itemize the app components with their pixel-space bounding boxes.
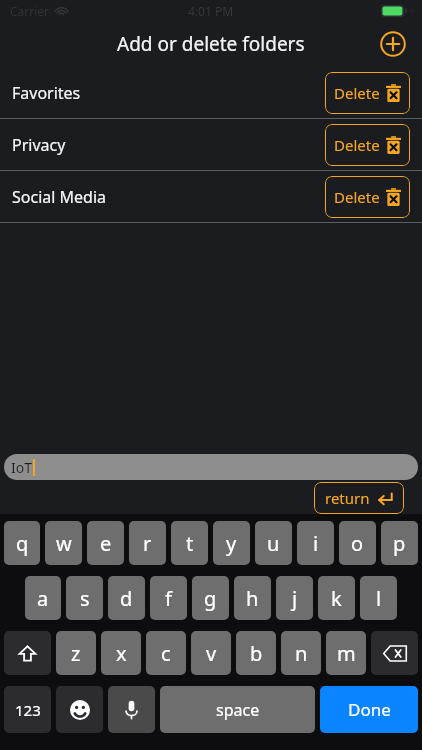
button[interactable]: p <box>381 521 418 565</box>
button[interactable]: v <box>191 631 231 675</box>
button[interactable]: Social Media <box>0 171 422 222</box>
button[interactable]: x <box>101 631 141 675</box>
button[interactable]: m <box>326 631 366 675</box>
staticText: space <box>216 699 260 721</box>
staticText: 123 <box>15 700 41 720</box>
button[interactable]: Favorites <box>0 67 422 118</box>
staticText: g <box>204 585 217 612</box>
button[interactable]: Add folder <box>376 27 410 61</box>
staticText: Favorites <box>12 82 81 104</box>
button[interactable]: Backspace <box>371 631 418 675</box>
staticText: p <box>393 530 406 557</box>
staticText: o <box>351 530 364 557</box>
button[interactable]: l <box>360 576 397 620</box>
button[interactable]: IoT <box>4 454 418 480</box>
staticText: k <box>331 585 342 612</box>
staticText: Delete <box>334 135 380 155</box>
button[interactable]: z <box>56 631 96 675</box>
staticText: b <box>250 640 263 667</box>
staticText: return <box>325 488 370 508</box>
staticText: f <box>165 585 172 612</box>
button[interactable]: j <box>276 576 313 620</box>
staticText: e <box>100 530 112 557</box>
staticText: h <box>246 585 259 612</box>
button[interactable]: s <box>66 576 103 620</box>
button[interactable]: c <box>146 631 186 675</box>
staticText: w <box>56 530 72 557</box>
staticText: s <box>80 585 90 612</box>
button[interactable]: w <box>45 521 82 565</box>
staticText: m <box>337 640 356 667</box>
button[interactable]: space <box>160 686 315 733</box>
staticText: r <box>143 530 152 557</box>
staticText: i <box>313 530 319 557</box>
button[interactable]: n <box>281 631 321 675</box>
staticText: Social Media <box>12 186 107 208</box>
staticText: Delete <box>334 187 380 207</box>
button[interactable]: f <box>150 576 187 620</box>
button[interactable]: g <box>192 576 229 620</box>
staticText: t <box>186 530 194 557</box>
button[interactable]: Done <box>320 686 418 733</box>
staticText: j <box>292 585 298 612</box>
button[interactable]: h <box>234 576 271 620</box>
button[interactable]: q <box>4 521 40 565</box>
staticText: z <box>71 640 81 667</box>
button[interactable]: Delete <box>325 176 410 218</box>
button[interactable]: k <box>318 576 355 620</box>
staticText: IoT <box>11 458 32 477</box>
staticText: n <box>295 640 308 667</box>
button[interactable]: Privacy <box>0 119 422 170</box>
button[interactable]: y <box>213 521 250 565</box>
staticText: Done <box>348 698 391 721</box>
staticText: v <box>206 640 217 667</box>
button[interactable]: b <box>236 631 276 675</box>
staticText: Carrier <box>10 3 50 19</box>
button[interactable]: Emoji <box>56 686 103 733</box>
button[interactable]: a <box>25 576 61 620</box>
button[interactable]: Delete <box>325 72 410 114</box>
staticText: Add or delete folders <box>117 31 305 57</box>
staticText: u <box>267 530 280 557</box>
staticText: y <box>226 530 237 557</box>
staticText: c <box>161 640 171 667</box>
button[interactable]: d <box>108 576 145 620</box>
staticText: 4:01 PM <box>188 3 234 19</box>
button[interactable]: Shift <box>4 631 51 675</box>
button[interactable]: r <box>129 521 166 565</box>
staticText: Privacy <box>12 134 66 156</box>
staticText: a <box>37 585 49 612</box>
button[interactable]: i <box>297 521 334 565</box>
button[interactable]: e <box>87 521 124 565</box>
button[interactable]: return <box>314 482 404 514</box>
button[interactable]: Delete <box>325 124 410 166</box>
staticText: x <box>116 640 127 667</box>
button[interactable]: Voice input <box>108 686 155 733</box>
staticText: Delete <box>334 83 380 103</box>
button[interactable]: o <box>339 521 376 565</box>
staticText: d <box>120 585 133 612</box>
staticText: l <box>376 585 382 612</box>
button[interactable]: 123 <box>4 686 51 733</box>
staticText: q <box>16 530 29 557</box>
button[interactable]: t <box>171 521 208 565</box>
button[interactable]: u <box>255 521 292 565</box>
